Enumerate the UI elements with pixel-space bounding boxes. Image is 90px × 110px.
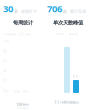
button[interactable]: 30	[3, 2, 37, 15]
staticText: 周一 周四 周日	[5, 90, 29, 93]
staticText: 60	[3, 59, 7, 63]
staticText: 7.1 小时/300m	[54, 99, 79, 105]
staticText: 单次天数峰值	[53, 19, 83, 26]
staticText: 累计完成	[70, 9, 86, 14]
button[interactable]: 706	[47, 2, 86, 15]
staticText: 每周统计	[13, 19, 33, 26]
staticText: 平均值	[55, 32, 64, 36]
staticText: 天	[14, 9, 18, 14]
staticText: 100	[3, 40, 9, 43]
staticText: 平均每日	[17, 106, 29, 110]
button[interactable]: 单次天数峰值	[45, 16, 90, 109]
staticText: 次	[63, 9, 67, 14]
staticText: 30	[3, 2, 13, 15]
staticText: 本周累计 120 分钟	[5, 32, 31, 36]
staticText: 128 km	[16, 101, 29, 107]
staticText: 706	[47, 2, 62, 15]
staticText: 40	[3, 69, 7, 73]
staticText: 最高值	[69, 32, 78, 36]
staticText: 80	[3, 50, 7, 53]
staticText: 7.1	[73, 75, 78, 79]
staticText: 连续打卡	[21, 9, 37, 14]
staticText: 20	[3, 79, 7, 82]
staticText: 0	[3, 89, 5, 92]
button[interactable]: 每周统计	[0, 16, 45, 109]
